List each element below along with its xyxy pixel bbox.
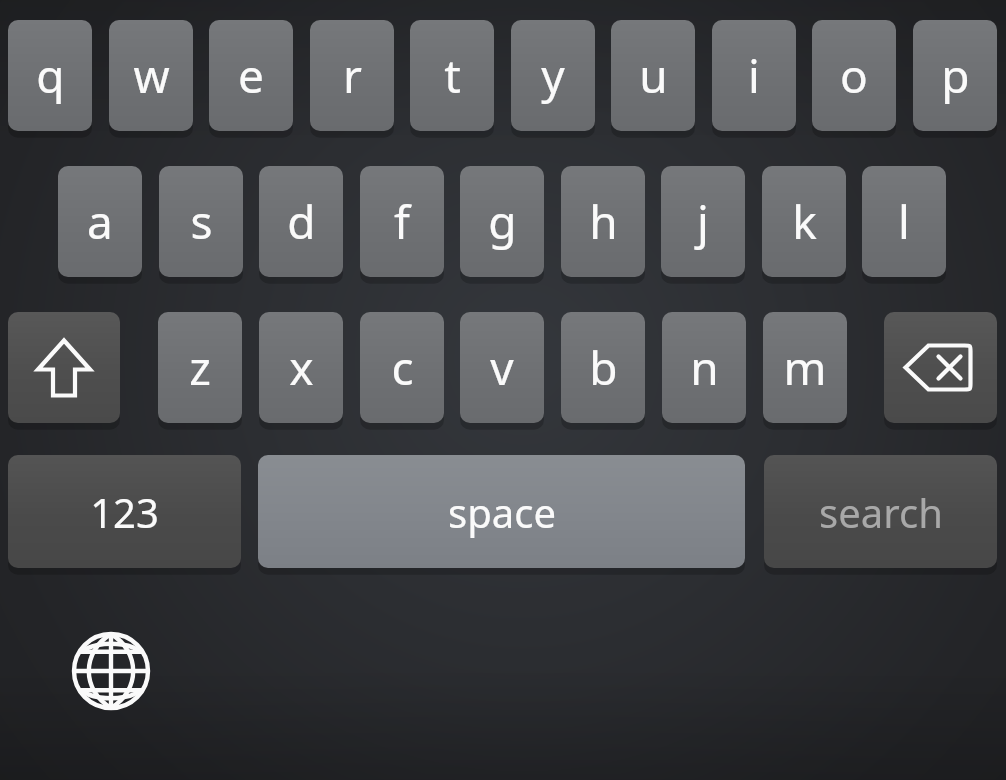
staticText: p (941, 44, 970, 107)
button[interactable]: t (410, 20, 494, 131)
button[interactable]: space (258, 455, 745, 568)
button[interactable]: z (158, 312, 242, 423)
staticText: l (898, 190, 910, 253)
button[interactable]: j (661, 166, 745, 277)
button[interactable]: x (259, 312, 343, 423)
button[interactable]: s (159, 166, 243, 277)
staticText: search (819, 485, 943, 539)
button[interactable]: m (763, 312, 847, 423)
staticText: z (189, 336, 211, 399)
button[interactable]: h (561, 166, 645, 277)
staticText: 123 (90, 485, 159, 539)
staticText: s (190, 190, 213, 253)
staticText: y (541, 44, 565, 107)
staticText: g (488, 190, 517, 253)
staticText: d (287, 190, 316, 253)
staticText: f (394, 190, 410, 253)
staticText: w (133, 44, 170, 107)
button[interactable]: i (712, 20, 796, 131)
button[interactable]: b (561, 312, 645, 423)
staticText: q (36, 44, 65, 107)
staticText: t (444, 44, 461, 107)
button[interactable]: n (662, 312, 746, 423)
staticText: o (840, 44, 868, 107)
staticText: x (289, 336, 314, 399)
button[interactable]: w (109, 20, 193, 131)
staticText: m (783, 336, 827, 399)
button[interactable]: f (360, 166, 444, 277)
button[interactable]: v (460, 312, 544, 423)
staticText: v (490, 336, 514, 399)
button[interactable]: u (611, 20, 695, 131)
button[interactable]: q (8, 20, 92, 131)
button[interactable]: l (862, 166, 946, 277)
button[interactable]: Shift (8, 312, 120, 423)
staticText: e (238, 44, 264, 107)
button[interactable]: Backspace (884, 312, 997, 423)
staticText: n (690, 336, 719, 399)
button[interactable]: o (812, 20, 896, 131)
button[interactable]: e (209, 20, 293, 131)
button[interactable]: g (460, 166, 544, 277)
staticText: r (343, 44, 362, 107)
staticText: i (748, 44, 760, 107)
button[interactable]: d (259, 166, 343, 277)
button[interactable]: search (764, 455, 997, 568)
staticText: k (792, 190, 817, 253)
staticText: b (589, 336, 618, 399)
staticText: j (697, 190, 709, 253)
button[interactable]: r (310, 20, 394, 131)
button[interactable]: p (913, 20, 997, 131)
staticText: h (589, 190, 618, 253)
button[interactable]: Switch keyboard language (71, 631, 151, 711)
staticText: u (639, 44, 668, 107)
button[interactable]: k (762, 166, 846, 277)
staticText: c (391, 336, 414, 399)
button[interactable]: a (58, 166, 142, 277)
staticText: space (448, 485, 556, 539)
button[interactable]: c (360, 312, 444, 423)
button[interactable]: 123 (8, 455, 241, 568)
button[interactable]: y (511, 20, 595, 131)
staticText: a (87, 190, 113, 253)
